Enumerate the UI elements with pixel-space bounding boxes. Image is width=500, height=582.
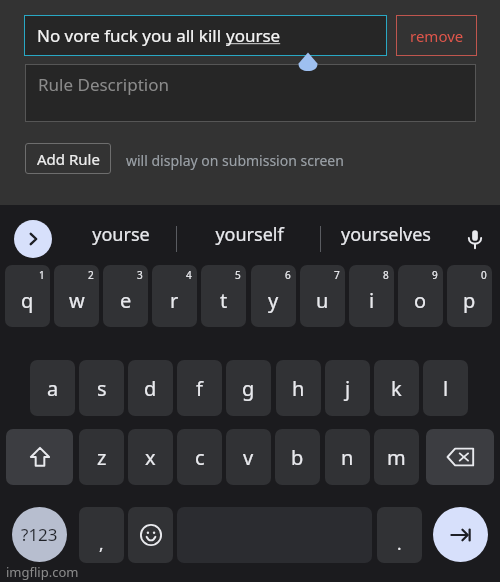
button[interactable]: 7 — [300, 265, 345, 327]
button[interactable]: Emoji — [128, 507, 173, 563]
button[interactable]: . — [377, 507, 422, 563]
staticText: 4 — [186, 268, 192, 282]
staticText: will display on submission screen — [126, 151, 344, 170]
staticText: f — [196, 375, 203, 402]
button[interactable]: 1 — [5, 265, 50, 327]
staticText: x — [145, 444, 156, 471]
button[interactable]: z — [79, 429, 124, 485]
staticText: 0 — [481, 268, 487, 282]
staticText: yourse — [226, 24, 281, 47]
staticText: m — [387, 444, 406, 471]
staticText: v — [243, 444, 254, 471]
staticText: remove — [410, 26, 464, 46]
staticText: yourse — [92, 222, 150, 247]
staticText: b — [291, 444, 304, 471]
button[interactable]: k — [374, 360, 419, 416]
staticText: d — [144, 375, 157, 402]
button[interactable]: f — [177, 360, 222, 416]
button[interactable]: 5 — [201, 265, 246, 327]
button[interactable]: yourself — [190, 210, 308, 258]
button[interactable]: g — [226, 360, 271, 416]
button[interactable]: 4 — [152, 265, 197, 327]
staticText: y — [268, 287, 279, 314]
staticText: c — [195, 444, 205, 471]
staticText: u — [316, 287, 329, 314]
button[interactable]: 2 — [54, 265, 99, 327]
staticText: Add Rule — [37, 149, 100, 169]
staticText: . — [397, 532, 402, 555]
button[interactable]: yourselves — [320, 210, 452, 258]
button[interactable]: d — [128, 360, 173, 416]
staticText: 3 — [137, 268, 143, 282]
button[interactable]: c — [177, 429, 222, 485]
staticText: 7 — [334, 268, 340, 282]
button[interactable]: 8 — [349, 265, 394, 327]
button[interactable]: m — [374, 429, 419, 485]
staticText: a — [47, 375, 59, 402]
staticText: e — [120, 287, 132, 314]
staticText: j — [345, 375, 351, 402]
button[interactable]: No vore fuck you all kill — [24, 15, 387, 56]
button[interactable]: remove — [396, 15, 477, 56]
staticText: r — [170, 287, 179, 314]
staticText: ?123 — [21, 523, 58, 546]
staticText: h — [292, 375, 305, 402]
button[interactable]: Backspace — [426, 429, 494, 485]
button[interactable]: b — [275, 429, 320, 485]
button[interactable]: Voice input — [458, 222, 491, 255]
staticText: g — [242, 375, 255, 402]
button[interactable]: More suggestions — [14, 220, 52, 258]
button[interactable]: Add Rule — [25, 143, 111, 174]
staticText: z — [97, 444, 107, 471]
button[interactable]: l — [423, 360, 468, 416]
staticText: yourself — [215, 222, 284, 247]
button[interactable]: n — [325, 429, 370, 485]
staticText: k — [391, 375, 402, 402]
button[interactable]: 0 — [447, 265, 492, 327]
button[interactable]: v — [226, 429, 271, 485]
staticText: o — [414, 287, 427, 314]
button[interactable]: Shift — [6, 429, 73, 485]
button[interactable]: h — [276, 360, 321, 416]
button[interactable]: ?123 — [12, 507, 67, 562]
staticText: 2 — [88, 268, 94, 282]
button[interactable]: Rule Description — [25, 64, 476, 122]
staticText: 1 — [39, 268, 45, 282]
staticText: n — [341, 444, 354, 471]
staticText: imgflip.com — [6, 563, 79, 581]
staticText: Rule Description — [38, 73, 169, 96]
staticText: l — [443, 375, 449, 402]
staticText: 8 — [383, 268, 389, 282]
button[interactable]: Enter — [433, 507, 488, 562]
staticText: q — [21, 287, 34, 314]
staticText: w — [69, 287, 85, 314]
button[interactable]: s — [79, 360, 124, 416]
staticText: t — [220, 287, 228, 314]
button[interactable]: j — [325, 360, 370, 416]
staticText: No vore fuck you all kill — [37, 24, 226, 47]
staticText: yourselves — [341, 222, 431, 247]
staticText: 5 — [235, 268, 241, 282]
button[interactable]: x — [128, 429, 173, 485]
staticText: , — [99, 532, 104, 555]
button[interactable]: 9 — [398, 265, 443, 327]
staticText: i — [369, 287, 375, 314]
button[interactable]: a — [30, 360, 75, 416]
button[interactable]: yourse — [68, 210, 174, 258]
staticText: p — [463, 287, 476, 314]
button[interactable]: , — [79, 507, 124, 563]
button[interactable]: 3 — [103, 265, 148, 327]
staticText: 9 — [432, 268, 438, 282]
staticText: 6 — [285, 268, 291, 282]
staticText: s — [97, 375, 107, 402]
button[interactable]: 6 — [251, 265, 296, 327]
